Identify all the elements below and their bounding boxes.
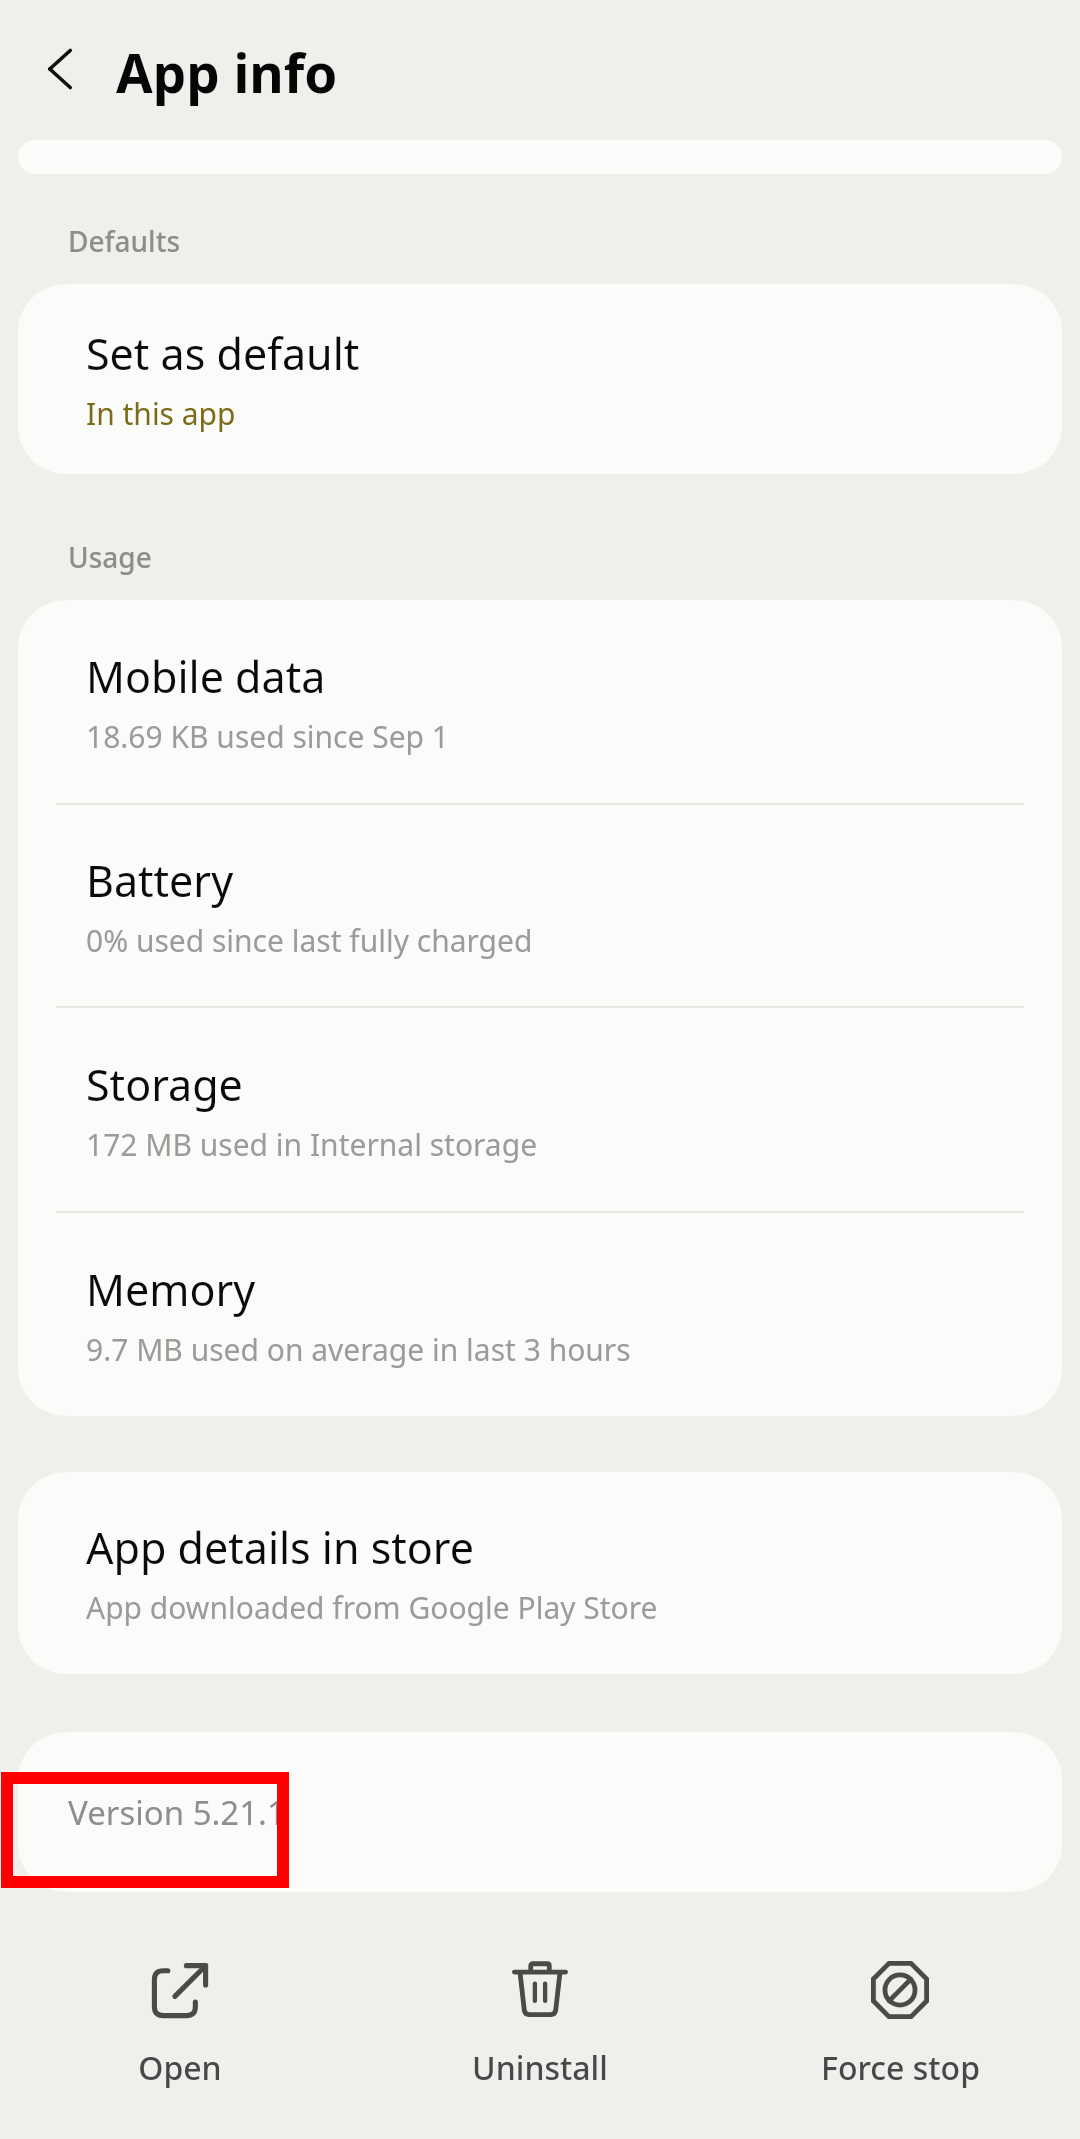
- staticText: Set as default: [86, 324, 360, 383]
- staticText: Uninstall: [472, 2046, 608, 2090]
- button[interactable]: Storage: [18, 1008, 1062, 1211]
- button[interactable]: Set as default: [18, 284, 1062, 474]
- button[interactable]: App details in store: [18, 1472, 1062, 1674]
- staticText: Force stop: [821, 2046, 980, 2090]
- staticText: Mobile data: [86, 647, 326, 706]
- staticText: In this app: [86, 393, 236, 434]
- button[interactable]: Uninstall: [360, 1958, 720, 2090]
- staticText: App details in store: [86, 1518, 474, 1577]
- staticText: Battery: [86, 851, 234, 910]
- staticText: App downloaded from Google Play Store: [86, 1587, 658, 1628]
- staticText: 9.7 MB used on average in last 3 hours: [86, 1329, 631, 1370]
- button[interactable]: Mobile data: [18, 600, 1062, 803]
- button[interactable]: Force stop: [720, 1958, 1080, 2090]
- button[interactable]: Open: [0, 1958, 360, 2090]
- staticText: Memory: [86, 1260, 256, 1319]
- staticText: 18.69 KB used since Sep 1: [86, 716, 449, 757]
- button[interactable]: Back: [28, 36, 94, 102]
- staticText: App info: [116, 36, 338, 108]
- staticText: 172 MB used in Internal storage: [86, 1124, 538, 1165]
- staticText: Usage: [68, 538, 152, 576]
- button[interactable]: Memory: [18, 1213, 1062, 1416]
- staticText: Defaults: [68, 222, 181, 260]
- button[interactable]: Battery: [18, 805, 1062, 1006]
- staticText: 0% used since last fully charged: [86, 920, 533, 961]
- staticText: Version 5.21.1: [68, 1790, 286, 1835]
- staticText: Storage: [86, 1055, 243, 1114]
- staticText: Open: [138, 2046, 222, 2090]
